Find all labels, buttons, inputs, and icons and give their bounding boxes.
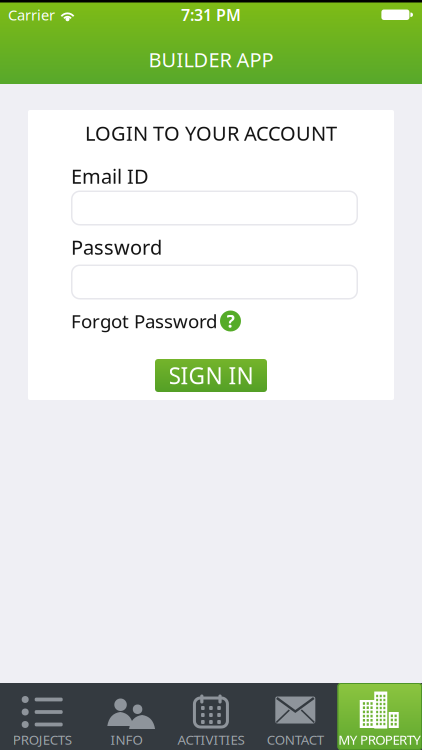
staticText: BUILDER APP <box>148 46 273 73</box>
staticText: SIGN IN <box>168 360 253 390</box>
button[interactable] <box>71 190 358 225</box>
staticText: Carrier <box>8 5 55 24</box>
staticText: LOGIN TO YOUR ACCOUNT <box>85 120 337 146</box>
button[interactable] <box>71 264 358 299</box>
staticText: 7:31 PM <box>181 4 241 25</box>
staticText: Email ID <box>71 163 149 189</box>
button[interactable]: CONTACT <box>253 683 337 750</box>
staticText: Forgot Password <box>71 309 217 333</box>
button[interactable]: SIGN IN <box>155 359 267 392</box>
button[interactable]: INFO <box>84 683 169 750</box>
staticText: CONTACT <box>267 731 324 748</box>
staticText: ? <box>226 309 234 332</box>
staticText: ACTIVITIES <box>177 731 244 748</box>
staticText: INFO <box>111 731 143 748</box>
staticText: Password <box>71 234 162 260</box>
button[interactable]: PROJECTS <box>0 683 84 750</box>
staticText: PROJECTS <box>13 731 72 748</box>
button[interactable]: Forgot Password <box>71 310 241 331</box>
button[interactable]: MY PROPERTY <box>337 683 422 750</box>
staticText: MY PROPERTY <box>338 731 421 748</box>
button[interactable]: ACTIVITIES <box>169 683 253 750</box>
